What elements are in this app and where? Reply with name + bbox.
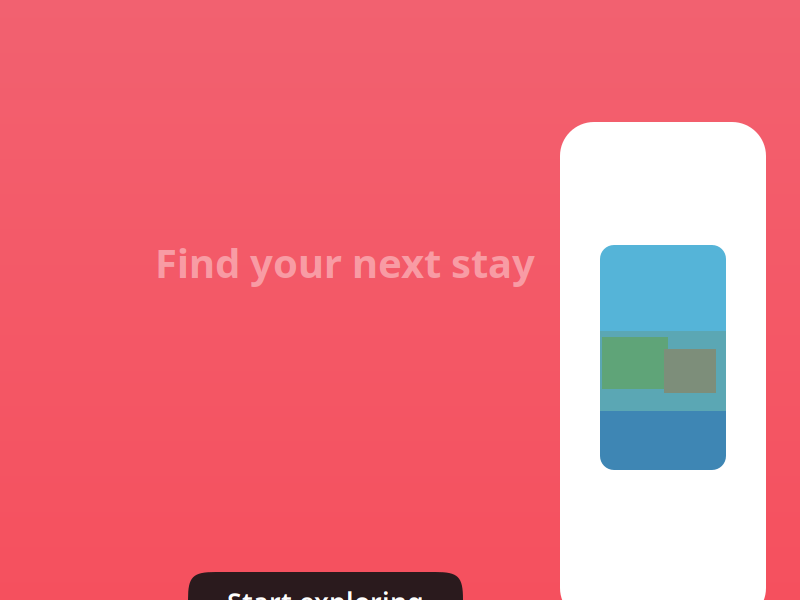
button[interactable]: Start exploring [188,572,463,600]
staticText: Find your next stay [155,236,535,289]
staticText: Start exploring [227,584,424,600]
